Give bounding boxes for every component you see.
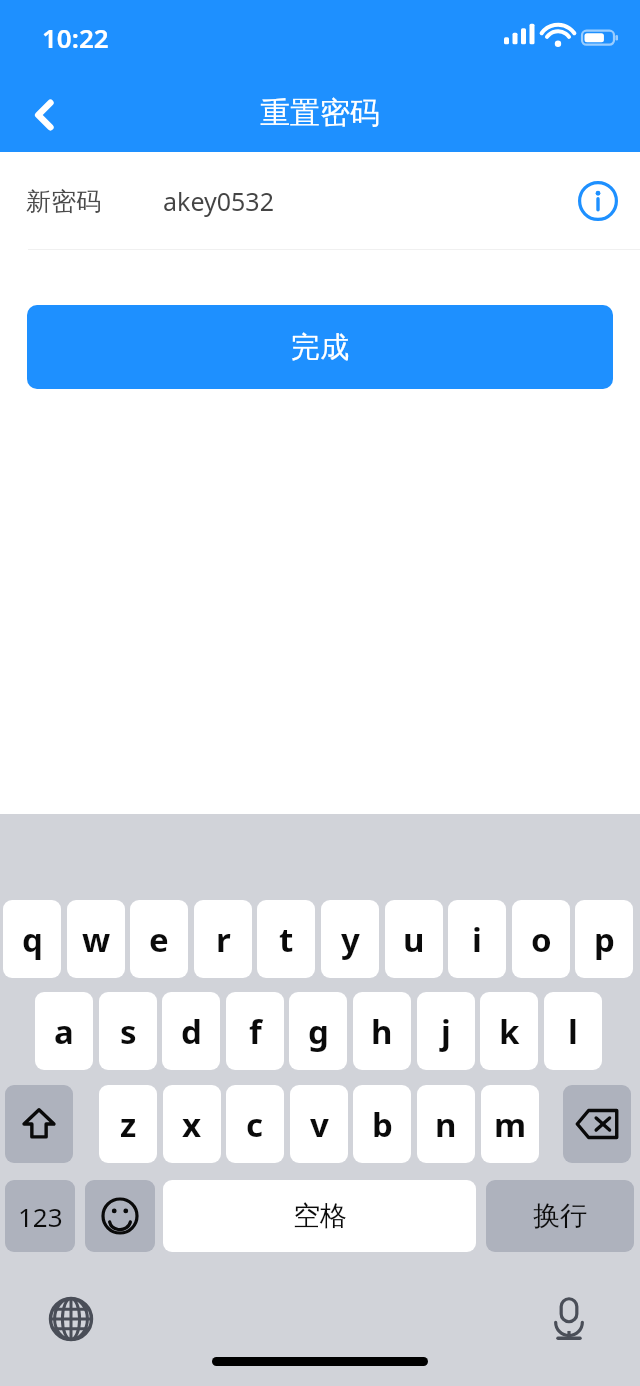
button[interactable]: x xyxy=(163,1085,221,1163)
button[interactable]: t xyxy=(257,900,315,978)
button[interactable]: j xyxy=(417,992,475,1070)
button[interactable]: 完成 xyxy=(27,305,613,389)
staticText: x xyxy=(182,1102,202,1147)
button[interactable]: m xyxy=(481,1085,539,1163)
button[interactable]: o xyxy=(512,900,570,978)
staticText: s xyxy=(120,1009,137,1054)
staticText: 换行 xyxy=(533,1199,587,1233)
staticText: 重置密码 xyxy=(0,94,640,132)
staticText: d xyxy=(181,1009,202,1054)
button[interactable]: h xyxy=(353,992,411,1070)
button[interactable]: e xyxy=(130,900,188,978)
button[interactable]: q xyxy=(3,900,61,978)
button[interactable]: Shift xyxy=(5,1085,73,1163)
button[interactable]: 新密码 xyxy=(0,152,640,250)
staticText: p xyxy=(594,917,615,962)
button[interactable]: Emoji xyxy=(85,1180,155,1252)
staticText: 123 xyxy=(18,1199,63,1234)
button[interactable]: 空格 xyxy=(163,1180,476,1252)
staticText: l xyxy=(568,1009,578,1054)
button[interactable]: a xyxy=(35,992,93,1070)
staticText: e xyxy=(149,917,169,962)
button[interactable]: Backspace xyxy=(563,1085,631,1163)
button[interactable]: Info xyxy=(570,173,626,229)
button[interactable]: v xyxy=(290,1085,348,1163)
button[interactable]: w xyxy=(67,900,125,978)
button[interactable]: Voice input xyxy=(540,1290,598,1348)
staticText: akey0532 xyxy=(163,184,274,218)
staticText: c xyxy=(246,1102,264,1147)
button[interactable]: s xyxy=(99,992,157,1070)
staticText: u xyxy=(403,917,425,962)
staticText: j xyxy=(441,1009,451,1054)
staticText: h xyxy=(371,1009,393,1054)
button[interactable]: r xyxy=(194,900,252,978)
button[interactable]: c xyxy=(226,1085,284,1163)
button[interactable]: p xyxy=(575,900,633,978)
button[interactable]: 123 xyxy=(5,1180,75,1252)
button[interactable]: l xyxy=(544,992,602,1070)
staticText: n xyxy=(435,1102,457,1147)
button[interactable]: k xyxy=(480,992,538,1070)
staticText: 完成 xyxy=(291,329,349,366)
staticText: v xyxy=(310,1102,329,1147)
button[interactable]: g xyxy=(289,992,347,1070)
staticText: g xyxy=(308,1009,329,1054)
staticText: z xyxy=(120,1102,137,1147)
staticText: 空格 xyxy=(293,1199,347,1233)
staticText: y xyxy=(341,917,360,962)
staticText: r xyxy=(216,917,231,962)
staticText: 新密码 xyxy=(26,186,101,217)
button[interactable]: Change keyboard xyxy=(42,1290,100,1348)
button[interactable]: u xyxy=(385,900,443,978)
button[interactable]: n xyxy=(417,1085,475,1163)
button[interactable]: 换行 xyxy=(486,1180,634,1252)
staticText: i xyxy=(472,917,482,962)
staticText: w xyxy=(82,917,111,962)
button[interactable]: b xyxy=(353,1085,411,1163)
button[interactable]: i xyxy=(448,900,506,978)
staticText: f xyxy=(249,1009,262,1054)
staticText: b xyxy=(372,1102,393,1147)
staticText: 10:22 xyxy=(42,20,109,55)
staticText: k xyxy=(499,1009,520,1054)
button[interactable]: Back xyxy=(14,84,76,146)
button[interactable]: d xyxy=(162,992,220,1070)
staticText: q xyxy=(22,917,43,962)
button[interactable]: f xyxy=(226,992,284,1070)
button[interactable]: z xyxy=(99,1085,157,1163)
staticText: a xyxy=(54,1009,74,1054)
staticText: o xyxy=(531,917,552,962)
staticText: t xyxy=(279,917,294,962)
button[interactable]: y xyxy=(321,900,379,978)
staticText: m xyxy=(494,1102,527,1147)
